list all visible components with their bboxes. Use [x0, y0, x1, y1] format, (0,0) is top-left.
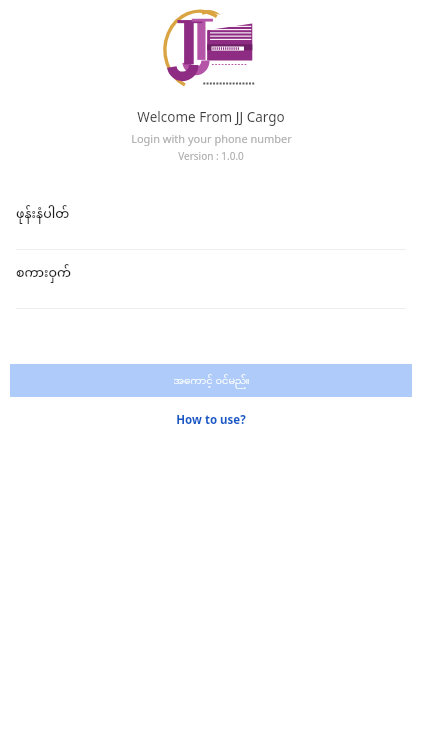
staticText: စကားဝှက်	[16, 260, 72, 287]
button[interactable]: ဖုန်းနံပါတ်	[0, 191, 422, 250]
staticText: How to use?	[176, 412, 246, 428]
button[interactable]: အကောင့် ဝင်မည်။	[10, 364, 412, 397]
staticText: Login with your phone number	[131, 131, 292, 146]
staticText: Welcome From JJ Cargo	[137, 108, 285, 126]
staticText: Version : 1.0.0	[178, 149, 244, 163]
button[interactable]: How to use?	[166, 409, 256, 431]
staticText: ဖုန်းနံပါတ်	[16, 201, 70, 228]
staticText: အကောင့် ဝင်မည်။	[173, 372, 250, 390]
button[interactable]: စကားဝှက်	[0, 250, 422, 309]
